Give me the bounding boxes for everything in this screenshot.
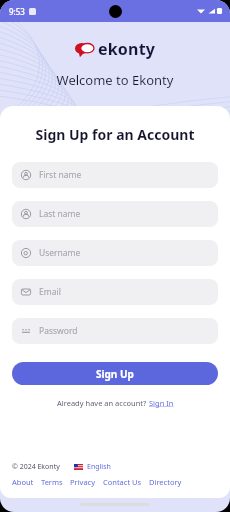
button[interactable]: English [87,462,111,472]
staticText: Welcome to Ekonty [0,71,230,89]
staticText: Privacy [70,477,96,487]
button[interactable]: Terms [41,477,63,487]
button[interactable]: Password [12,318,218,344]
button[interactable]: Sign Up [12,362,218,385]
button[interactable]: Last name [12,201,218,227]
staticText: Directory [149,477,182,487]
staticText: First name [39,169,82,181]
staticText: Password [39,325,78,337]
staticText: © 2024 Ekonty [12,462,60,472]
staticText: 9:53 [9,6,25,17]
staticText: Sign Up for an Account [0,125,230,144]
staticText: Terms [41,477,63,487]
staticText: Username [39,247,81,259]
staticText: Sign Up [96,367,134,381]
button[interactable]: Sign In [149,398,174,408]
staticText: About [12,477,34,487]
staticText: Contact Us [103,477,142,487]
button[interactable]: First name [12,162,218,188]
staticText: Already have an account? [57,398,149,408]
button[interactable]: Directory [149,477,182,487]
staticText: Sign In [149,398,174,408]
staticText: English [87,462,111,472]
button[interactable]: Privacy [70,477,96,487]
staticText: Email [39,286,61,298]
staticText: Last name [39,208,81,220]
button[interactable]: About [12,477,34,487]
staticText: ekonty [98,38,156,60]
button[interactable]: Contact Us [103,477,142,487]
button[interactable]: Email [12,279,218,305]
button[interactable]: Username [12,240,218,266]
